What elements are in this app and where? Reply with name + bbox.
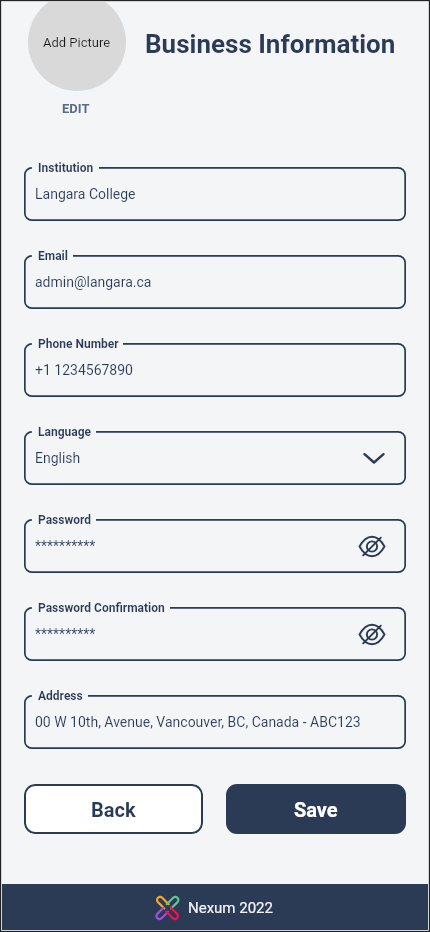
button[interactable]: ********** bbox=[24, 607, 406, 661]
button[interactable]: admin@langara.ca bbox=[24, 255, 406, 309]
staticText: Language bbox=[38, 425, 92, 439]
button[interactable]: English bbox=[24, 431, 406, 485]
other: Expand language list bbox=[363, 450, 385, 466]
button[interactable]: Save bbox=[226, 784, 406, 834]
staticText: Add Picture bbox=[43, 35, 111, 50]
staticText: ********** bbox=[35, 626, 96, 642]
button[interactable]: +1 1234567890 bbox=[24, 343, 406, 397]
button[interactable]: ********** bbox=[24, 519, 406, 573]
staticText: Institution bbox=[38, 161, 94, 175]
staticText: Nexum 2022 bbox=[188, 899, 273, 917]
button[interactable]: Add Picture bbox=[28, 0, 126, 91]
staticText: Save bbox=[294, 798, 338, 821]
staticText: Phone Number bbox=[38, 337, 119, 351]
staticText: ********** bbox=[35, 538, 96, 554]
other: Toggle password visibility bbox=[359, 624, 385, 645]
staticText: Password Confirmation bbox=[38, 601, 165, 615]
staticText: Back bbox=[91, 798, 136, 821]
staticText: Business Information bbox=[145, 29, 396, 59]
staticText: Langara College bbox=[35, 186, 136, 202]
other: Toggle password visibility bbox=[359, 536, 385, 557]
button[interactable]: EDIT bbox=[62, 101, 90, 116]
button[interactable]: 00 W 10th, Avenue, Vancouver, BC, Canada… bbox=[24, 695, 406, 749]
staticText: Address bbox=[38, 689, 83, 703]
staticText: 00 W 10th, Avenue, Vancouver, BC, Canada… bbox=[35, 714, 361, 730]
staticText: Password bbox=[38, 513, 92, 527]
staticText: English bbox=[35, 450, 81, 466]
button[interactable]: Langara College bbox=[24, 167, 406, 221]
staticText: admin@langara.ca bbox=[35, 274, 152, 290]
staticText: +1 1234567890 bbox=[35, 362, 133, 378]
button[interactable]: Back bbox=[24, 784, 203, 834]
staticText: Email bbox=[38, 249, 68, 263]
